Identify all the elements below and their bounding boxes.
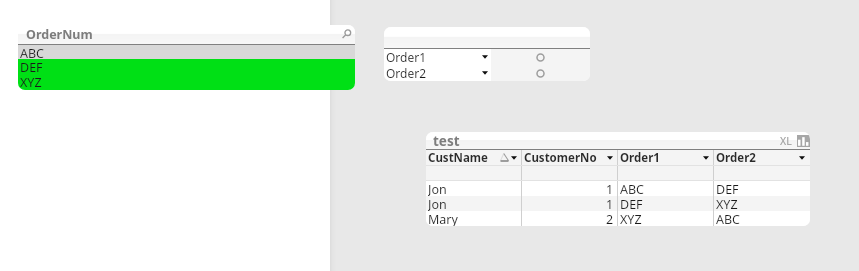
button[interactable]: XYZ <box>18 74 355 90</box>
staticText: DEF <box>716 181 739 196</box>
button[interactable]: ABC <box>18 45 355 59</box>
button[interactable]: Order1 <box>384 49 491 65</box>
button[interactable]: Export to Excel <box>780 134 792 148</box>
staticText: ABC <box>20 45 45 59</box>
button[interactable]: Chart <box>797 135 810 147</box>
staticText: XYZ <box>620 211 642 226</box>
staticText: CustomerNo <box>524 150 597 165</box>
staticText: DEF <box>20 59 43 74</box>
button[interactable]: Order1 <box>618 150 714 165</box>
button[interactable]: Jon <box>426 181 810 196</box>
staticText: Order1 <box>386 49 427 65</box>
staticText: 1 <box>606 196 614 211</box>
staticText: Order1 <box>620 150 660 165</box>
button[interactable]: Order2 <box>384 65 491 81</box>
button[interactable]: CustomerNo <box>522 150 618 165</box>
staticText: DEF <box>620 196 643 211</box>
staticText: Order2 <box>386 65 427 81</box>
staticText: XL <box>780 134 792 148</box>
staticText: Jon <box>428 181 447 196</box>
button[interactable]: Select value <box>491 65 590 81</box>
staticText: Jon <box>428 196 447 211</box>
button[interactable]: Jon <box>426 196 810 211</box>
button[interactable]: Search <box>340 28 353 41</box>
staticText: OrderNum <box>26 26 93 43</box>
staticText: ABC <box>716 211 741 226</box>
staticText: XYZ <box>716 196 738 211</box>
staticText: Order2 <box>716 150 756 165</box>
button[interactable]: Select value <box>491 49 590 65</box>
staticText: 2 <box>606 211 614 226</box>
button[interactable]: OrderNum <box>18 25 355 44</box>
staticText: Mary <box>428 211 458 226</box>
button[interactable]: Order2 <box>714 150 810 165</box>
button[interactable] <box>384 27 590 48</box>
button[interactable]: CustName <box>426 150 522 165</box>
button[interactable]: DEF <box>18 59 355 74</box>
staticText: ABC <box>620 181 645 196</box>
staticText: 1 <box>606 181 614 196</box>
button[interactable]: Mary <box>426 211 810 226</box>
staticText: test <box>433 132 460 149</box>
staticText: CustName <box>428 150 488 165</box>
staticText: XYZ <box>20 74 42 90</box>
button[interactable]: test <box>426 132 810 149</box>
